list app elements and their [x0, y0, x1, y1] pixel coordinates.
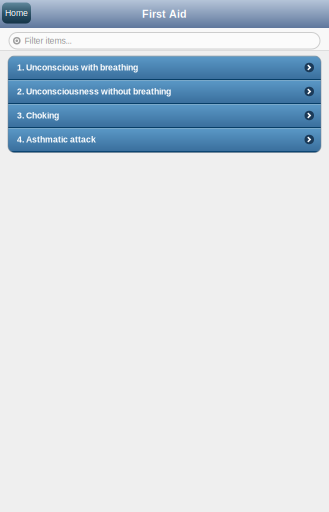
button[interactable]: Home [2, 2, 31, 23]
staticText: 3. Choking [17, 111, 59, 120]
button[interactable]: Filter items... [9, 32, 320, 49]
button[interactable]: 4. Asthmatic attack [8, 128, 321, 151]
staticText: 1. Unconscious with breathing [17, 63, 138, 72]
button[interactable]: 3. Choking [8, 104, 321, 127]
staticText: 2. Unconsciousness without breathing [17, 87, 171, 96]
staticText: First Aid [142, 8, 187, 20]
button[interactable]: 1. Unconscious with breathing [8, 56, 321, 79]
staticText: Filter items... [25, 36, 72, 46]
staticText: 4. Asthmatic attack [17, 135, 96, 144]
button[interactable]: 2. Unconsciousness without breathing [8, 80, 321, 103]
staticText: Home [5, 8, 28, 18]
